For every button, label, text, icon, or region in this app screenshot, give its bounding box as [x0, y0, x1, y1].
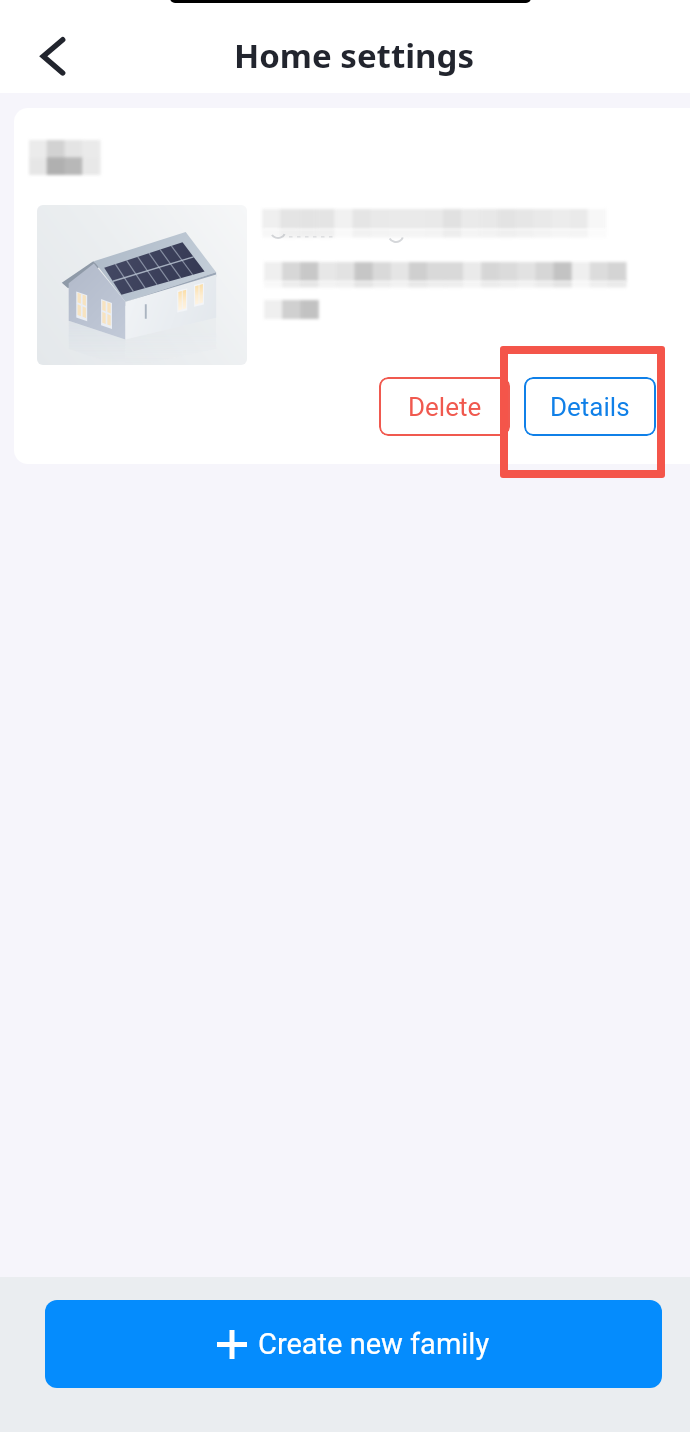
staticText: Create new family	[258, 1327, 490, 1361]
staticText: Home settings	[234, 33, 474, 78]
staticText: Details	[550, 392, 630, 422]
button[interactable]: Back	[17, 20, 87, 92]
button[interactable]: Delete	[379, 377, 510, 436]
button[interactable]: Details	[524, 377, 656, 436]
button[interactable]: Create new family	[45, 1300, 662, 1388]
staticText: Delete	[408, 392, 482, 422]
